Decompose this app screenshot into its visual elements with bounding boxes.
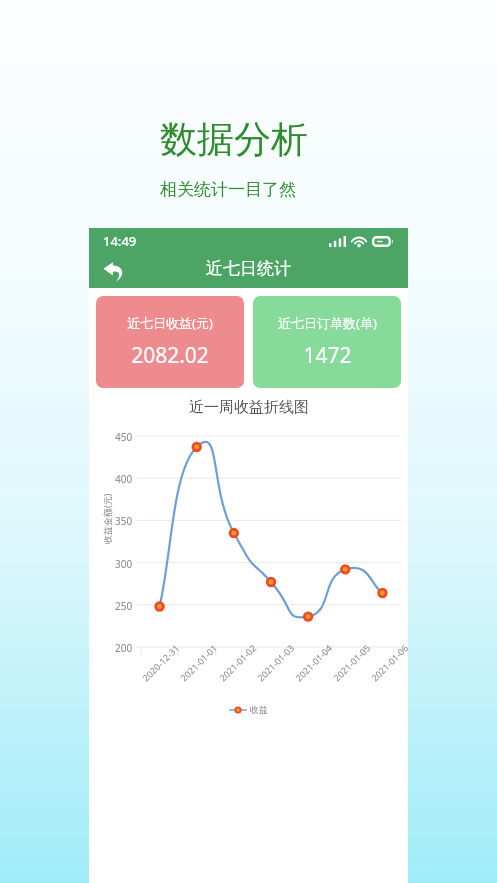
staticText: 2082.02 (131, 341, 209, 370)
staticText: 14:49 (103, 232, 137, 250)
staticText: 近一周收益折线图 (189, 398, 309, 417)
staticText: 收益金额(元) (101, 493, 113, 544)
staticText: 2021-01-01 (177, 642, 219, 683)
staticText: 近七日收益(元) (127, 314, 213, 332)
staticText: 数据分析 (160, 116, 308, 163)
staticText: 2021-01-02 (216, 642, 258, 683)
staticText: 250 (115, 599, 133, 613)
button[interactable]: Back (97, 254, 131, 288)
staticText: 近七日订单数(单) (278, 314, 377, 332)
staticText: 收益 (250, 704, 268, 715)
staticText: 2021-01-05 (330, 642, 372, 683)
staticText: 相关统计一目了然 (160, 179, 296, 200)
staticText: 2020-12-31 (139, 642, 181, 683)
staticText: 近七日统计 (206, 258, 291, 279)
staticText: 2021-01-06 (368, 642, 410, 683)
staticText: 1472 (303, 341, 352, 370)
staticText: 450 (115, 430, 133, 444)
button[interactable]: 近七日订单数(单) (253, 296, 401, 388)
staticText: 2021-01-03 (254, 642, 296, 683)
button[interactable]: 近七日收益(元) (96, 296, 244, 388)
staticText: 350 (115, 514, 133, 528)
staticText: 300 (115, 557, 133, 571)
staticText: 400 (115, 472, 133, 486)
staticText: 200 (115, 641, 133, 655)
staticText: 2021-01-04 (292, 642, 334, 683)
